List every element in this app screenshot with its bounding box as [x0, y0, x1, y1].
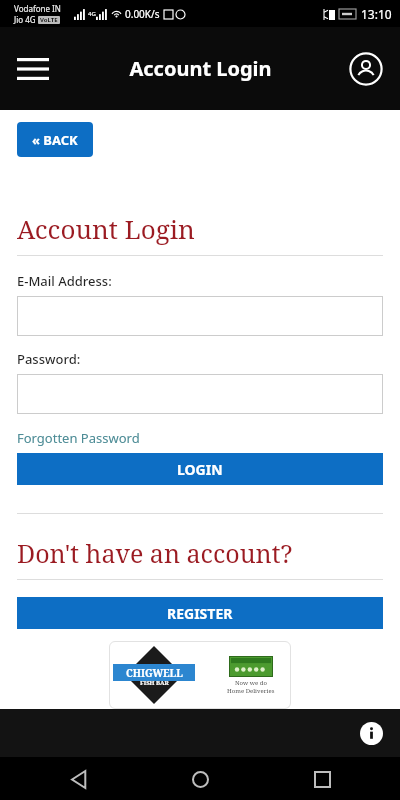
- button[interactable]: Home: [182, 761, 218, 797]
- staticText: Don't have an account?: [17, 536, 293, 570]
- staticText: 13:10: [361, 6, 392, 22]
- staticText: CHIGWELL: [126, 666, 183, 680]
- button[interactable]: Information: [354, 716, 388, 750]
- button[interactable]: LOGIN: [17, 453, 383, 485]
- button[interactable]: Back: [60, 761, 96, 797]
- staticText: 4G: [88, 10, 96, 18]
- button[interactable]: « BACK: [17, 122, 93, 157]
- staticText: Account Login: [17, 211, 195, 246]
- staticText: Vodafone IN: [14, 3, 61, 14]
- staticText: Now we do: [235, 679, 267, 687]
- staticText: LOGIN: [177, 460, 223, 479]
- button[interactable]: Open navigation menu: [10, 46, 56, 92]
- staticText: REGISTER: [167, 604, 233, 623]
- staticText: Jio 4G: [14, 14, 38, 25]
- button[interactable]: Recent apps: [304, 761, 340, 797]
- staticText: Forgotten Password: [17, 429, 140, 447]
- staticText: Home Deliveries: [227, 687, 275, 695]
- staticText: « BACK: [32, 131, 78, 149]
- button[interactable]: Forgotten Password: [17, 429, 140, 447]
- staticText: FISH BAR: [140, 679, 169, 687]
- staticText: 0.00K/s: [125, 7, 160, 21]
- button[interactable]: [17, 374, 383, 414]
- staticText: VoLTE: [40, 16, 58, 24]
- staticText: MATZO: [145, 664, 164, 671]
- staticText: Account Login: [129, 55, 272, 82]
- staticText: Password:: [17, 350, 81, 368]
- button[interactable]: Chigwell Fish Bar logo: [109, 641, 291, 709]
- button[interactable]: REGISTER: [17, 597, 383, 629]
- button[interactable]: Account: [346, 49, 386, 89]
- button[interactable]: [17, 296, 383, 336]
- staticText: E-Mail Address:: [17, 272, 112, 290]
